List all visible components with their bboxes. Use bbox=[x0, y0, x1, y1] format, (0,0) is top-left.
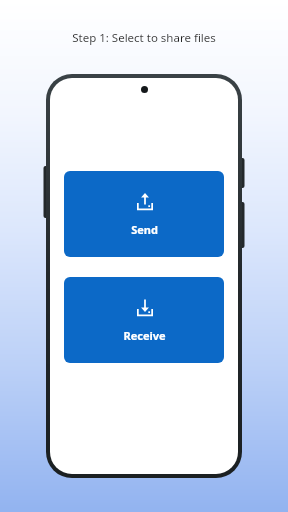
staticText: Receive bbox=[123, 328, 166, 343]
staticText: Step 1: Select to share files bbox=[72, 30, 216, 46]
button[interactable]: Send bbox=[64, 171, 224, 257]
staticText: Send bbox=[131, 222, 158, 237]
other: Send bbox=[134, 191, 156, 213]
button[interactable]: Receive bbox=[64, 277, 224, 363]
other: Receive bbox=[134, 297, 156, 319]
